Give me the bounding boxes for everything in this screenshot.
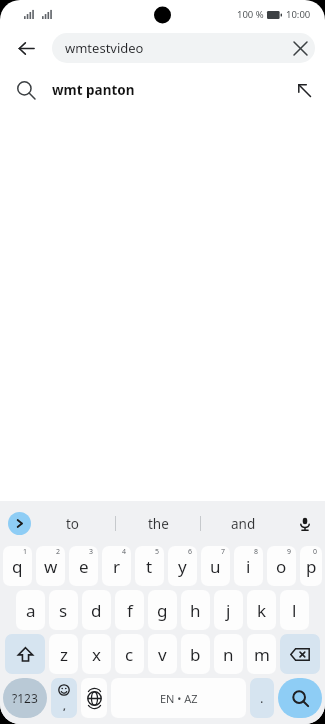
button[interactable]: g bbox=[148, 590, 177, 630]
staticText: f bbox=[127, 599, 133, 622]
button[interactable]: wmtestvideo bbox=[52, 33, 315, 63]
staticText: n bbox=[223, 643, 234, 666]
staticText: 3 bbox=[89, 547, 94, 557]
staticText: 6 bbox=[188, 547, 193, 557]
button[interactable]: c bbox=[115, 634, 144, 674]
staticText: the bbox=[148, 515, 169, 533]
button[interactable]: Emoji bbox=[51, 678, 77, 718]
button[interactable]: More suggestions bbox=[8, 512, 31, 535]
button[interactable]: o bbox=[267, 546, 296, 586]
staticText: 9 bbox=[287, 547, 292, 557]
staticText: l bbox=[292, 599, 297, 622]
button[interactable]: e bbox=[69, 546, 98, 586]
button[interactable]: p bbox=[300, 546, 322, 586]
button[interactable]: v bbox=[148, 634, 177, 674]
button[interactable]: r bbox=[102, 546, 131, 586]
button[interactable]: x bbox=[82, 634, 111, 674]
button[interactable]: w bbox=[36, 546, 65, 586]
button[interactable]: q bbox=[3, 546, 32, 586]
button[interactable]: Shift bbox=[5, 634, 45, 674]
staticText: 8 bbox=[254, 547, 259, 557]
staticText: h bbox=[190, 599, 201, 622]
button[interactable]: EN • AZ bbox=[111, 678, 246, 718]
button[interactable]: f bbox=[115, 590, 144, 630]
staticText: d bbox=[91, 599, 102, 622]
staticText: x bbox=[92, 643, 101, 666]
staticText: 0 bbox=[313, 547, 318, 557]
staticText: 7 bbox=[221, 547, 226, 557]
staticText: m bbox=[254, 643, 270, 666]
staticText: c bbox=[125, 643, 134, 666]
button[interactable]: Backspace bbox=[280, 634, 320, 674]
staticText: 1 bbox=[23, 547, 28, 557]
button[interactable]: b bbox=[181, 634, 210, 674]
staticText: u bbox=[210, 555, 221, 578]
staticText: p bbox=[306, 555, 317, 578]
staticText: ?123 bbox=[12, 690, 38, 706]
staticText: wmtestvideo bbox=[65, 39, 144, 57]
staticText: k bbox=[257, 599, 267, 622]
button[interactable]: s bbox=[49, 590, 78, 630]
staticText: g bbox=[157, 599, 168, 622]
button[interactable]: i bbox=[234, 546, 263, 586]
button[interactable]: Clear bbox=[285, 33, 315, 63]
button[interactable]: y bbox=[168, 546, 197, 586]
button[interactable]: a bbox=[16, 590, 45, 630]
staticText: and bbox=[231, 515, 256, 533]
staticText: t bbox=[146, 555, 153, 578]
button[interactable]: l bbox=[280, 590, 309, 630]
staticText: . bbox=[260, 689, 264, 707]
staticText: s bbox=[59, 599, 68, 622]
button[interactable]: z bbox=[49, 634, 78, 674]
button[interactable]: Insert suggestion bbox=[283, 68, 325, 112]
button[interactable]: wmt panton bbox=[0, 68, 325, 112]
staticText: o bbox=[276, 555, 287, 578]
button[interactable]: h bbox=[181, 590, 210, 630]
staticText: b bbox=[190, 643, 201, 666]
button[interactable]: the bbox=[116, 501, 200, 546]
staticText: e bbox=[79, 555, 89, 578]
staticText: 5 bbox=[155, 547, 160, 557]
staticText: EN • AZ bbox=[160, 691, 198, 706]
staticText: 2 bbox=[56, 547, 61, 557]
button[interactable]: j bbox=[214, 590, 243, 630]
button[interactable]: t bbox=[135, 546, 164, 586]
staticText: w bbox=[44, 555, 58, 578]
staticText: 100 % bbox=[237, 8, 264, 21]
staticText: z bbox=[60, 643, 68, 666]
button[interactable]: . bbox=[250, 678, 274, 718]
staticText: to bbox=[66, 515, 80, 533]
button[interactable]: m bbox=[247, 634, 276, 674]
button[interactable]: d bbox=[82, 590, 111, 630]
staticText: i bbox=[246, 555, 251, 578]
staticText: j bbox=[226, 599, 231, 622]
staticText: r bbox=[113, 555, 121, 578]
button[interactable]: Voice input bbox=[285, 501, 325, 546]
button[interactable]: Back bbox=[0, 28, 52, 68]
button[interactable]: ?123 bbox=[3, 678, 47, 718]
staticText: 10:00 bbox=[286, 8, 311, 21]
staticText: y bbox=[178, 555, 187, 578]
staticText: q bbox=[12, 555, 23, 578]
staticText: a bbox=[26, 599, 36, 622]
staticText: , bbox=[63, 699, 66, 713]
staticText: wmt panton bbox=[52, 81, 135, 99]
staticText: 4 bbox=[122, 547, 127, 557]
button[interactable]: Search bbox=[278, 678, 322, 718]
button[interactable]: k bbox=[247, 590, 276, 630]
button[interactable]: and bbox=[201, 501, 285, 546]
staticText: v bbox=[158, 643, 167, 666]
button[interactable]: to bbox=[31, 501, 115, 546]
button[interactable]: u bbox=[201, 546, 230, 586]
button[interactable]: n bbox=[214, 634, 243, 674]
button[interactable]: Language bbox=[81, 678, 107, 718]
